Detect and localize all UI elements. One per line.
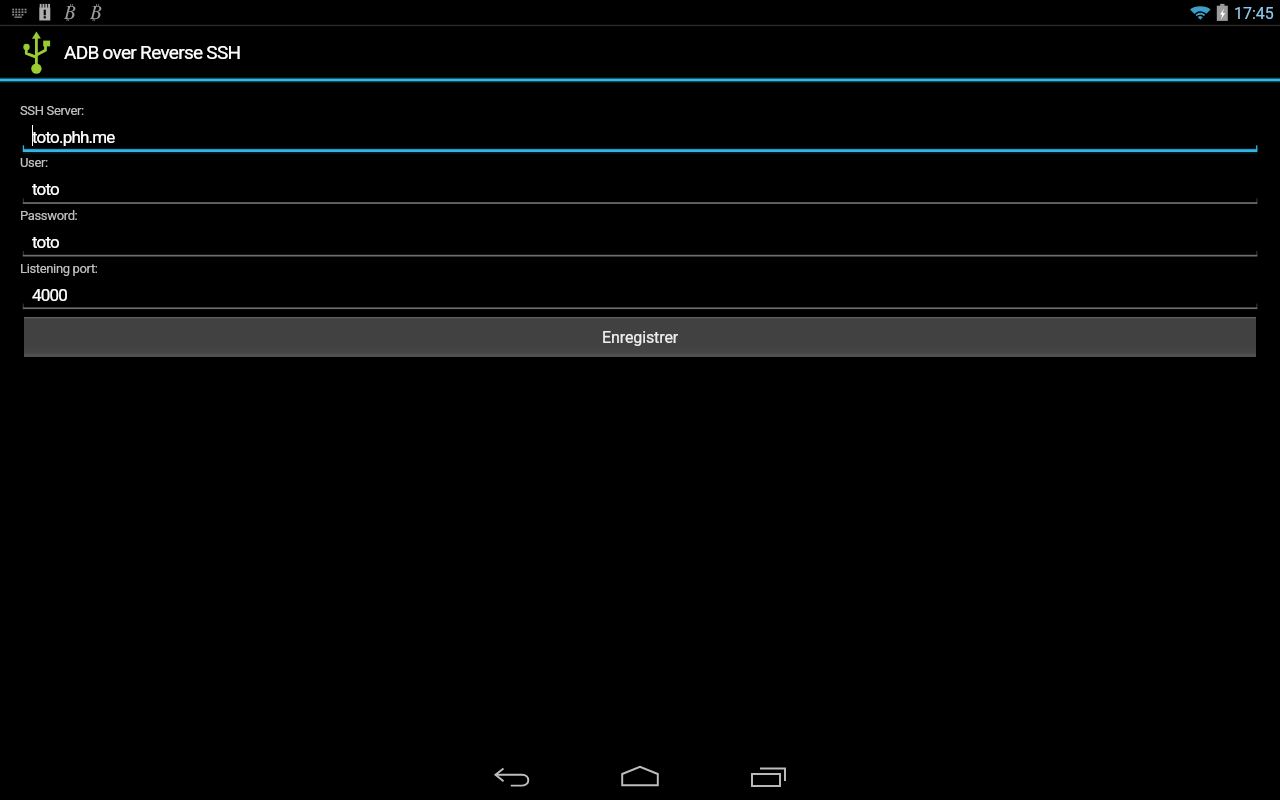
button[interactable]: Listening port: xyxy=(23,281,1258,309)
staticText: Password: xyxy=(20,208,78,223)
staticText: 17:45 xyxy=(1234,4,1274,23)
button[interactable]: SSH Server: xyxy=(23,123,1258,151)
staticText: 4000 xyxy=(32,285,68,305)
staticText: ₿ xyxy=(90,4,102,23)
staticText: toto xyxy=(32,232,59,252)
staticText: SSH Server: xyxy=(20,103,84,118)
button[interactable]: User: xyxy=(23,175,1258,203)
button[interactable]: Recent apps xyxy=(704,752,832,800)
button[interactable]: Back xyxy=(448,752,576,800)
staticText: toto.phh.me xyxy=(32,127,115,147)
button[interactable]: Enregistrer xyxy=(24,317,1256,357)
staticText: ADB over Reverse SSH xyxy=(64,41,241,63)
staticText: ₿ xyxy=(64,4,76,23)
staticText: User: xyxy=(20,155,48,170)
staticText: Listening port: xyxy=(20,261,98,276)
button[interactable]: Home xyxy=(576,752,704,800)
staticText: Enregistrer xyxy=(602,328,679,347)
staticText: toto xyxy=(32,179,59,199)
button[interactable]: Password: xyxy=(23,228,1258,256)
